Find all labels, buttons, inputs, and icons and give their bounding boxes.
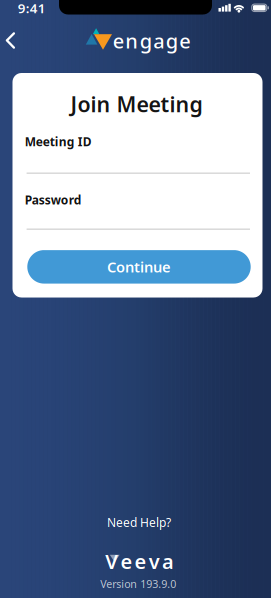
staticText: n bbox=[125, 27, 138, 54]
staticText: v bbox=[149, 548, 160, 574]
staticText: g bbox=[140, 27, 152, 54]
button[interactable]: Meeting ID bbox=[25, 129, 252, 175]
staticText: a bbox=[153, 27, 164, 54]
staticText: Version 193.9.0 bbox=[100, 577, 176, 591]
button[interactable] bbox=[0, 18, 36, 62]
staticText: Join Meeting bbox=[70, 90, 202, 118]
staticText: a bbox=[162, 548, 174, 574]
staticText: e bbox=[135, 548, 147, 574]
staticText: 9:41 bbox=[18, 0, 46, 17]
button[interactable]: Need Help? bbox=[107, 514, 171, 530]
staticText: e bbox=[120, 548, 132, 574]
button[interactable]: Password bbox=[25, 186, 252, 232]
staticText: Continue bbox=[107, 257, 171, 277]
staticText: Password bbox=[25, 192, 82, 208]
staticText: g bbox=[166, 27, 178, 54]
staticText: V bbox=[105, 548, 118, 574]
staticText: e bbox=[179, 27, 190, 54]
staticText: e bbox=[113, 27, 124, 54]
button[interactable]: Continue bbox=[27, 250, 251, 284]
staticText: Need Help? bbox=[107, 514, 171, 530]
staticText: Meeting ID bbox=[25, 133, 92, 149]
